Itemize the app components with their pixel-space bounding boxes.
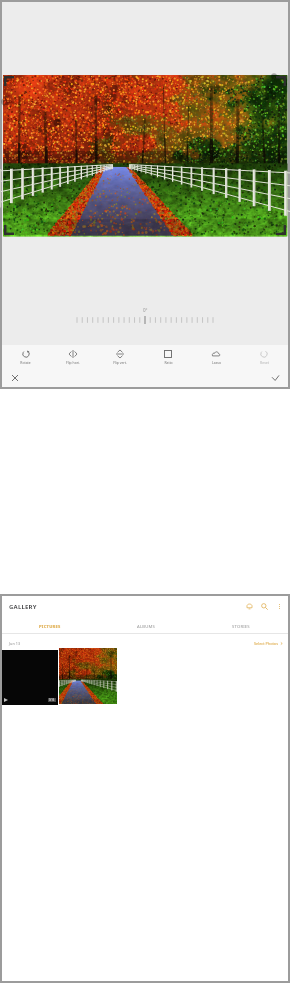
button[interactable]: Lasso bbox=[192, 345, 240, 369]
button[interactable]: STORIES bbox=[193, 620, 288, 634]
staticText: Select Photos bbox=[254, 641, 278, 646]
staticText: Flip hori. bbox=[66, 360, 80, 365]
button[interactable]: Flip vert. bbox=[96, 345, 144, 369]
button[interactable]: Cancel bbox=[2, 369, 28, 387]
staticText: Flip vert. bbox=[113, 360, 127, 365]
button[interactable]: Flip hori. bbox=[49, 345, 96, 369]
button[interactable]: More options bbox=[272, 599, 287, 614]
button[interactable]: Select Photos bbox=[254, 641, 283, 646]
staticText: GALLERY bbox=[9, 603, 37, 611]
button[interactable]: Notifications bbox=[242, 599, 257, 614]
staticText: 0:16 bbox=[49, 698, 55, 702]
staticText: Ratio bbox=[164, 360, 173, 365]
staticText: Reset bbox=[260, 360, 269, 365]
button[interactable] bbox=[59, 648, 117, 704]
staticText: Lasso bbox=[212, 360, 221, 365]
button[interactable]: 0:16 bbox=[2, 650, 58, 705]
button[interactable]: Rotate bbox=[2, 345, 49, 369]
staticText: Jun 13 bbox=[9, 641, 21, 646]
button[interactable]: PICTURES bbox=[2, 620, 98, 634]
button[interactable]: Apply bbox=[262, 369, 288, 387]
button[interactable]: Ratio bbox=[144, 345, 192, 369]
staticText: PICTURES bbox=[39, 624, 61, 630]
staticText: 0° bbox=[143, 307, 148, 313]
staticText: STORIES bbox=[232, 624, 250, 630]
staticText: ALBUMS bbox=[137, 624, 155, 630]
button[interactable]: Reset bbox=[240, 345, 288, 369]
button[interactable]: ALBUMS bbox=[98, 620, 193, 634]
staticText: Rotate bbox=[20, 360, 31, 365]
button[interactable]: Search bbox=[257, 599, 272, 614]
